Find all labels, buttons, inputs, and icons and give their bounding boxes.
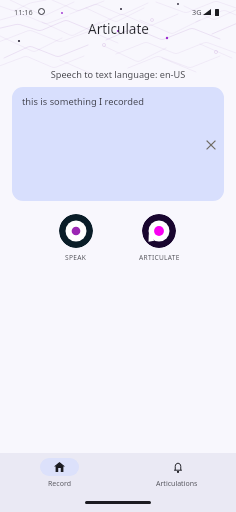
- staticText: SPEAK: [65, 253, 87, 262]
- button[interactable]: Record: [0, 453, 118, 489]
- staticText: Articulations: [156, 479, 198, 489]
- button[interactable]: ARTICULATE: [142, 214, 176, 248]
- button[interactable]: Articulations: [118, 453, 236, 489]
- button[interactable]: SPEAK: [59, 214, 93, 248]
- staticText: this is something I recorded: [22, 95, 144, 108]
- staticText: 11:16: [14, 7, 33, 17]
- staticText: ARTICULATE: [139, 253, 180, 262]
- staticText: Record: [48, 479, 71, 489]
- staticText: Articulate: [88, 20, 149, 38]
- staticText: 3G: [192, 7, 202, 17]
- button[interactable]: Clear text: [198, 132, 223, 157]
- staticText: Speech to text language: en-US: [0, 68, 236, 81]
